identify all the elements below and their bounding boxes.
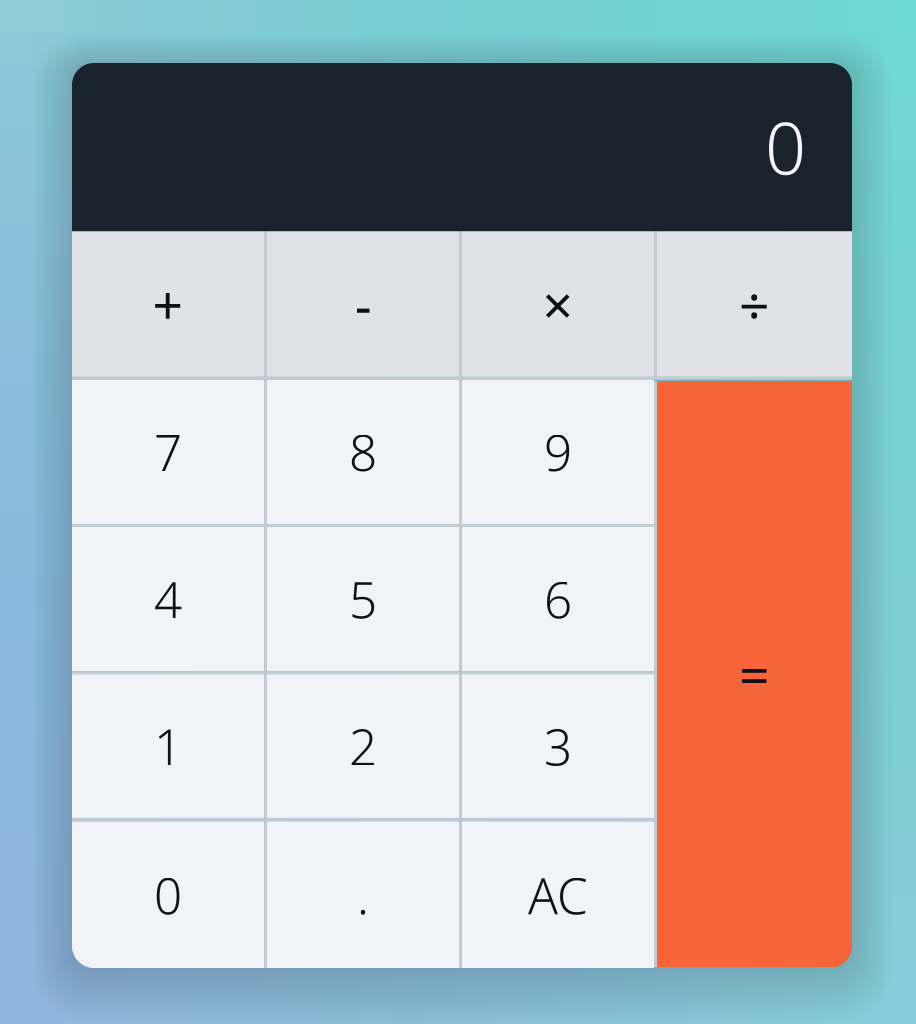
staticText: × <box>542 269 573 339</box>
staticText: 2 <box>349 713 377 779</box>
staticText: 8 <box>349 419 377 485</box>
staticText: 6 <box>544 566 572 632</box>
button[interactable]: = <box>657 381 852 967</box>
staticText: 0 <box>765 99 806 195</box>
button[interactable]: ÷ <box>657 231 852 377</box>
staticText: . <box>357 862 369 928</box>
staticText: 4 <box>154 566 182 632</box>
staticText: 9 <box>544 419 572 485</box>
button[interactable]: 5 <box>267 527 459 671</box>
button[interactable]: 7 <box>72 380 264 524</box>
button[interactable]: 4 <box>72 527 264 671</box>
button[interactable]: 6 <box>462 527 654 671</box>
button[interactable]: 0 <box>72 821 264 969</box>
button[interactable]: - <box>267 231 459 377</box>
staticText: AC <box>528 862 588 928</box>
button[interactable]: AC <box>462 821 654 969</box>
staticText: 1 <box>154 713 182 779</box>
staticText: 3 <box>544 713 572 779</box>
staticText: ÷ <box>739 269 770 339</box>
staticText: 0 <box>154 862 182 928</box>
button[interactable]: 2 <box>267 674 459 818</box>
staticText: 7 <box>154 419 182 485</box>
staticText: = <box>739 639 770 710</box>
button[interactable]: 8 <box>267 380 459 524</box>
staticText: + <box>152 269 183 339</box>
button[interactable]: 1 <box>72 674 264 818</box>
button[interactable]: 3 <box>462 674 654 818</box>
button[interactable]: 9 <box>462 380 654 524</box>
button[interactable]: . <box>267 821 459 969</box>
staticText: - <box>354 269 371 339</box>
button[interactable]: × <box>462 231 654 377</box>
button[interactable]: + <box>72 231 264 377</box>
staticText: 5 <box>349 566 377 632</box>
